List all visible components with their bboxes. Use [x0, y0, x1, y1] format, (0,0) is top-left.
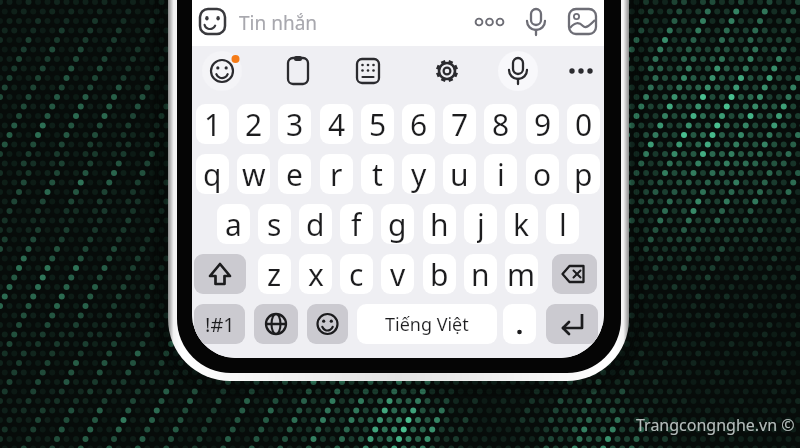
- button[interactable]: 0: [567, 104, 600, 144]
- staticText: y: [411, 154, 427, 194]
- button[interactable]: g: [381, 204, 414, 244]
- staticText: l: [559, 204, 567, 244]
- staticText: 1: [204, 104, 222, 144]
- button[interactable]: o: [526, 154, 559, 194]
- staticText: Trangcongnghe.vn ©: [636, 414, 795, 436]
- staticText: a: [225, 204, 242, 244]
- button[interactable]: k: [505, 204, 538, 244]
- button[interactable]: m: [505, 254, 538, 294]
- button[interactable]: [546, 304, 598, 344]
- staticText: 3: [286, 104, 304, 144]
- button[interactable]: 9: [526, 104, 559, 144]
- button[interactable]: c: [340, 254, 373, 294]
- button[interactable]: Tiếng Việt: [357, 304, 497, 344]
- button[interactable]: [278, 51, 318, 91]
- button[interactable]: !#1: [194, 304, 245, 344]
- button[interactable]: 3: [278, 104, 311, 144]
- button[interactable]: [552, 254, 597, 294]
- staticText: x: [308, 254, 324, 294]
- button[interactable]: w: [237, 154, 270, 194]
- button[interactable]: j: [464, 204, 497, 244]
- button[interactable]: u: [443, 154, 476, 194]
- button[interactable]: [254, 304, 298, 344]
- staticText: c: [349, 254, 364, 294]
- button[interactable]: v: [381, 254, 414, 294]
- button[interactable]: h: [423, 204, 456, 244]
- button[interactable]: b: [423, 254, 456, 294]
- button[interactable]: 4: [320, 104, 353, 144]
- button[interactable]: s: [258, 204, 291, 244]
- staticText: n: [471, 254, 490, 294]
- button[interactable]: 6: [402, 104, 435, 144]
- staticText: s: [267, 204, 282, 244]
- staticText: g: [388, 204, 407, 244]
- staticText: 6: [410, 104, 428, 144]
- staticText: q: [203, 154, 222, 194]
- staticText: p: [574, 154, 593, 194]
- staticText: w: [242, 154, 266, 194]
- button[interactable]: [307, 304, 348, 344]
- staticText: !#1: [205, 311, 235, 338]
- staticText: v: [390, 254, 406, 294]
- button[interactable]: 8: [484, 104, 517, 144]
- button[interactable]: [202, 51, 242, 91]
- button[interactable]: e: [278, 154, 311, 194]
- button[interactable]: [498, 51, 538, 91]
- staticText: 8: [492, 104, 510, 144]
- button[interactable]: [348, 51, 388, 91]
- button[interactable]: y: [402, 154, 435, 194]
- staticText: 0: [575, 104, 593, 144]
- staticText: r: [330, 154, 343, 194]
- button[interactable]: p: [567, 154, 600, 194]
- staticText: d: [306, 204, 325, 244]
- staticText: Tin nhắn: [239, 10, 318, 36]
- staticText: i: [497, 154, 505, 194]
- button[interactable]: f: [340, 204, 373, 244]
- button[interactable]: d: [299, 204, 332, 244]
- staticText: k: [513, 204, 530, 244]
- button[interactable]: 2: [237, 104, 270, 144]
- button[interactable]: 1: [196, 104, 229, 144]
- button[interactable]: [561, 51, 601, 91]
- button[interactable]: q: [196, 154, 229, 194]
- button[interactable]: n: [464, 254, 497, 294]
- staticText: 5: [369, 104, 387, 144]
- button[interactable]: [194, 254, 246, 294]
- button[interactable]: [427, 51, 467, 91]
- staticText: j: [477, 204, 485, 244]
- staticText: z: [267, 254, 282, 294]
- staticText: h: [430, 204, 449, 244]
- button[interactable]: l: [546, 204, 579, 244]
- button[interactable]: x: [299, 254, 332, 294]
- staticText: b: [430, 254, 449, 294]
- button[interactable]: t: [361, 154, 394, 194]
- button[interactable]: a: [217, 204, 250, 244]
- staticText: 4: [328, 104, 346, 144]
- button[interactable]: i: [484, 154, 517, 194]
- staticText: o: [533, 154, 552, 194]
- staticText: e: [286, 154, 303, 194]
- button[interactable]: z: [258, 254, 291, 294]
- staticText: t: [372, 154, 383, 194]
- staticText: 9: [534, 104, 552, 144]
- staticText: u: [450, 154, 469, 194]
- button[interactable]: 7: [443, 104, 476, 144]
- staticText: f: [351, 204, 362, 244]
- staticText: 7: [451, 104, 469, 144]
- staticText: Tiếng Việt: [385, 312, 469, 337]
- button[interactable]: [192, 0, 604, 46]
- staticText: m: [507, 254, 536, 294]
- staticText: 2: [245, 104, 263, 144]
- button[interactable]: r: [320, 154, 353, 194]
- button[interactable]: 5: [361, 104, 394, 144]
- button[interactable]: [503, 304, 536, 344]
